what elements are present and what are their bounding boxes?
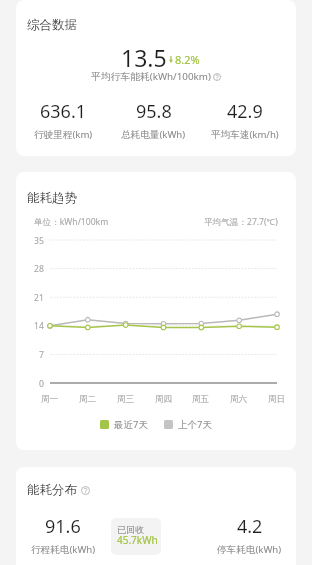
staticText: 综合数据 xyxy=(27,17,77,33)
button[interactable]: 42.9 xyxy=(199,99,290,141)
staticText: 上个7天 xyxy=(178,418,212,431)
staticText: 周六 xyxy=(230,394,248,405)
staticText: 636.1 xyxy=(40,99,87,124)
staticText: 能耗分布 xyxy=(27,482,77,498)
staticText: 平均气温：27.7(℃) xyxy=(204,216,278,228)
other: 说明 xyxy=(213,73,221,81)
button[interactable]: 已回收 xyxy=(111,518,161,555)
staticText: 周五 xyxy=(192,394,210,405)
staticText: 已回收 xyxy=(117,524,145,535)
staticText: 35 xyxy=(34,235,44,247)
staticText: 周日 xyxy=(268,394,286,405)
staticText: 91.6 xyxy=(45,514,81,539)
staticText: 周四 xyxy=(155,394,173,405)
staticText: 42.9 xyxy=(227,99,263,124)
staticText: 周一 xyxy=(41,394,59,405)
staticText: 平均车速(km/h) xyxy=(211,128,279,141)
button[interactable]: 636.1 xyxy=(18,99,108,141)
staticText: 7 xyxy=(39,349,44,361)
button[interactable]: 4.2 xyxy=(203,514,296,556)
staticText: 周三 xyxy=(117,394,135,405)
staticText: 周二 xyxy=(79,394,97,405)
staticText: 单位：kWh/100km xyxy=(34,216,109,228)
staticText: 13.5 xyxy=(121,42,167,73)
button[interactable]: 91.6 xyxy=(16,514,110,556)
staticText: 45.7kWh xyxy=(117,533,158,547)
staticText: 8.2% xyxy=(175,52,200,67)
staticText: 4.2 xyxy=(237,514,263,539)
staticText: 28 xyxy=(34,263,44,275)
staticText: 95.8 xyxy=(136,99,172,124)
staticText: 21 xyxy=(34,292,44,304)
staticText: 停车耗电(kWh) xyxy=(217,543,282,556)
staticText: 行程耗电(kWh) xyxy=(31,543,96,556)
other: 说明 xyxy=(81,486,90,495)
staticText: 行驶里程(km) xyxy=(34,128,93,141)
staticText: 14 xyxy=(34,320,44,332)
staticText: 平均行车能耗(kWh/100km) xyxy=(91,70,211,83)
staticText: 最近7天 xyxy=(114,418,148,431)
button[interactable]: 95.8 xyxy=(108,99,199,141)
staticText: 0 xyxy=(39,378,44,390)
staticText: 总耗电量(kWh) xyxy=(121,128,186,141)
staticText: 能耗趋势 xyxy=(27,190,77,206)
